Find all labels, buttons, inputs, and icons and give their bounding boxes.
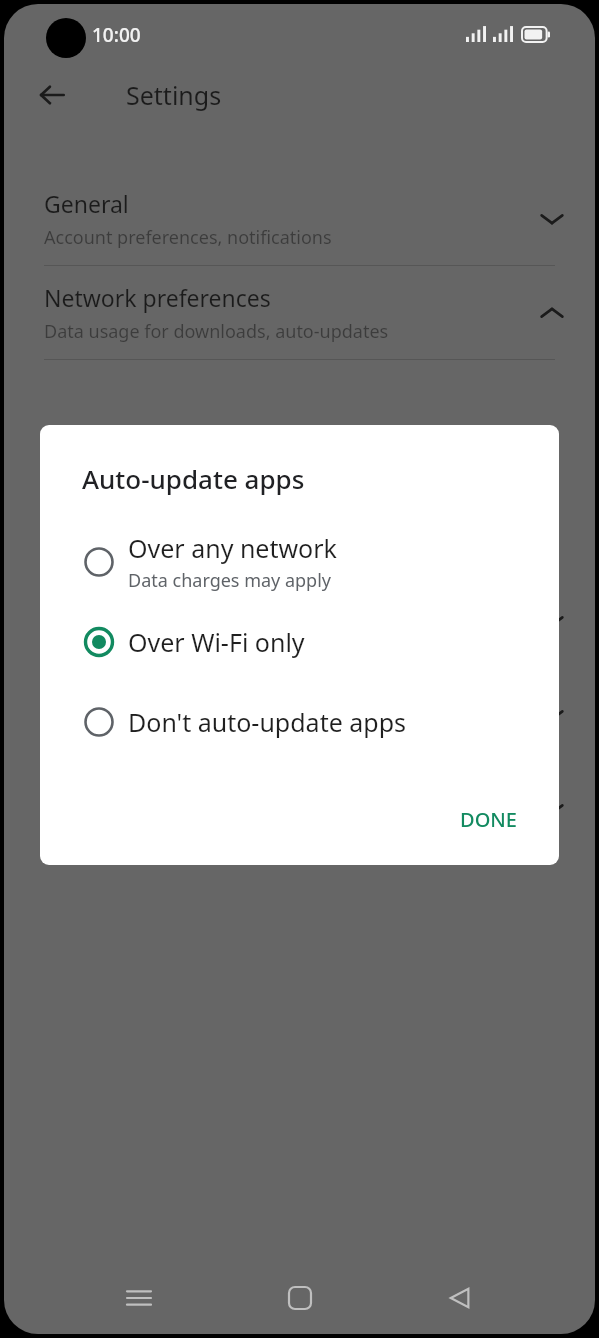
staticText: Fingerprint, purchase authentication [44, 627, 354, 652]
staticText: Over any network [128, 531, 337, 565]
staticText: Account preferences, notifications [44, 225, 332, 250]
staticText: Parental control, parent guide [44, 721, 298, 746]
staticText: Data charges may apply [128, 568, 332, 593]
staticText: Over Wi-Fi only [128, 625, 305, 659]
button[interactable]: Family [4, 668, 595, 761]
button[interactable]: DONE [446, 796, 531, 843]
staticText: Family [44, 684, 114, 715]
staticText: Don't auto-update apps [128, 705, 407, 739]
button[interactable]: Don't auto-update apps [40, 682, 559, 762]
staticText: DONE [460, 806, 517, 833]
staticText: General [44, 188, 129, 219]
button[interactable]: Authentication [4, 574, 595, 667]
button[interactable]: Network preferences [4, 266, 595, 359]
staticText: 10:00 [92, 22, 141, 48]
button[interactable]: Over any network [40, 522, 559, 602]
button[interactable]: About [4, 762, 595, 855]
button[interactable]: Back [434, 1272, 486, 1324]
staticText: Auto-update apps [82, 461, 305, 496]
button[interactable]: Home [274, 1272, 326, 1324]
button[interactable]: Back [30, 73, 74, 117]
button[interactable]: Recent apps [113, 1272, 165, 1324]
button[interactable]: Over Wi-Fi only [40, 602, 559, 682]
button[interactable]: General [4, 172, 595, 265]
staticText: Settings [126, 78, 222, 112]
staticText: Data usage for downloads, auto-updates [44, 319, 389, 344]
staticText: Network preferences [44, 282, 271, 313]
